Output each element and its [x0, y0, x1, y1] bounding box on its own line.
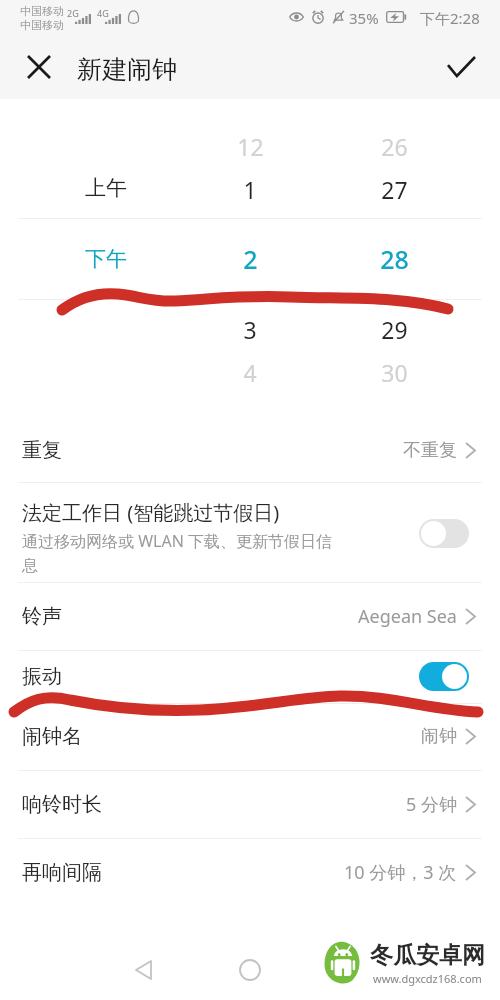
- staticText: 28: [380, 242, 409, 276]
- button[interactable]: Home: [225, 945, 275, 995]
- staticText: www.dgxcdz168.com: [373, 971, 482, 986]
- staticText: 通过移动网络或 WLAN 下载、更新节假日信 息: [22, 530, 332, 576]
- staticText: 2G: [67, 7, 79, 19]
- button[interactable]: 再响间隔: [0, 838, 500, 906]
- button[interactable]: 铃声: [0, 582, 500, 650]
- staticText: 35%: [349, 8, 379, 28]
- staticText: 5 分钟: [406, 792, 457, 817]
- staticText: 重复: [22, 438, 62, 463]
- staticText: 29: [381, 314, 408, 345]
- staticText: 27: [381, 174, 408, 205]
- staticText: 4: [243, 357, 257, 388]
- button[interactable]: 闹钟名: [0, 703, 500, 770]
- staticText: 4G: [97, 7, 109, 19]
- staticText: 响铃时长: [22, 792, 102, 817]
- staticText: 铃声: [22, 604, 62, 629]
- staticText: 闹钟: [421, 725, 457, 748]
- staticText: 冬瓜安卓网: [370, 941, 485, 970]
- staticText: 上午: [85, 175, 127, 201]
- button[interactable]: Switch on: [419, 662, 469, 691]
- staticText: 下午2:28: [420, 8, 480, 28]
- staticText: Aegean Sea: [358, 604, 457, 629]
- button[interactable]: Back: [118, 945, 168, 995]
- staticText: 30: [381, 357, 408, 388]
- button[interactable]: 重复: [0, 418, 500, 482]
- staticText: 10 分钟，3 次: [344, 860, 457, 885]
- button[interactable]: 响铃时长: [0, 770, 500, 838]
- button[interactable]: Confirm: [439, 44, 484, 89]
- staticText: 下午: [85, 246, 127, 272]
- staticText: 新建闹钟: [77, 54, 177, 85]
- staticText: 12: [237, 131, 264, 162]
- staticText: 2: [243, 242, 258, 276]
- staticText: 1: [243, 174, 257, 205]
- staticText: 3: [243, 314, 257, 345]
- staticText: 26: [381, 131, 408, 162]
- button[interactable]: 法定工作日 (智能跳过节假日): [0, 482, 500, 582]
- staticText: 法定工作日 (智能跳过节假日): [22, 499, 280, 526]
- staticText: 不重复: [403, 439, 457, 462]
- staticText: 振动: [22, 664, 62, 689]
- button[interactable]: Switch off: [419, 519, 469, 548]
- staticText: 再响间隔: [22, 860, 102, 885]
- staticText: 闹钟名: [22, 724, 82, 749]
- button[interactable]: 振动: [0, 650, 500, 703]
- staticText: 中国移动: [20, 18, 64, 32]
- button[interactable]: Close: [16, 44, 61, 89]
- staticText: 中国移动: [20, 4, 64, 18]
